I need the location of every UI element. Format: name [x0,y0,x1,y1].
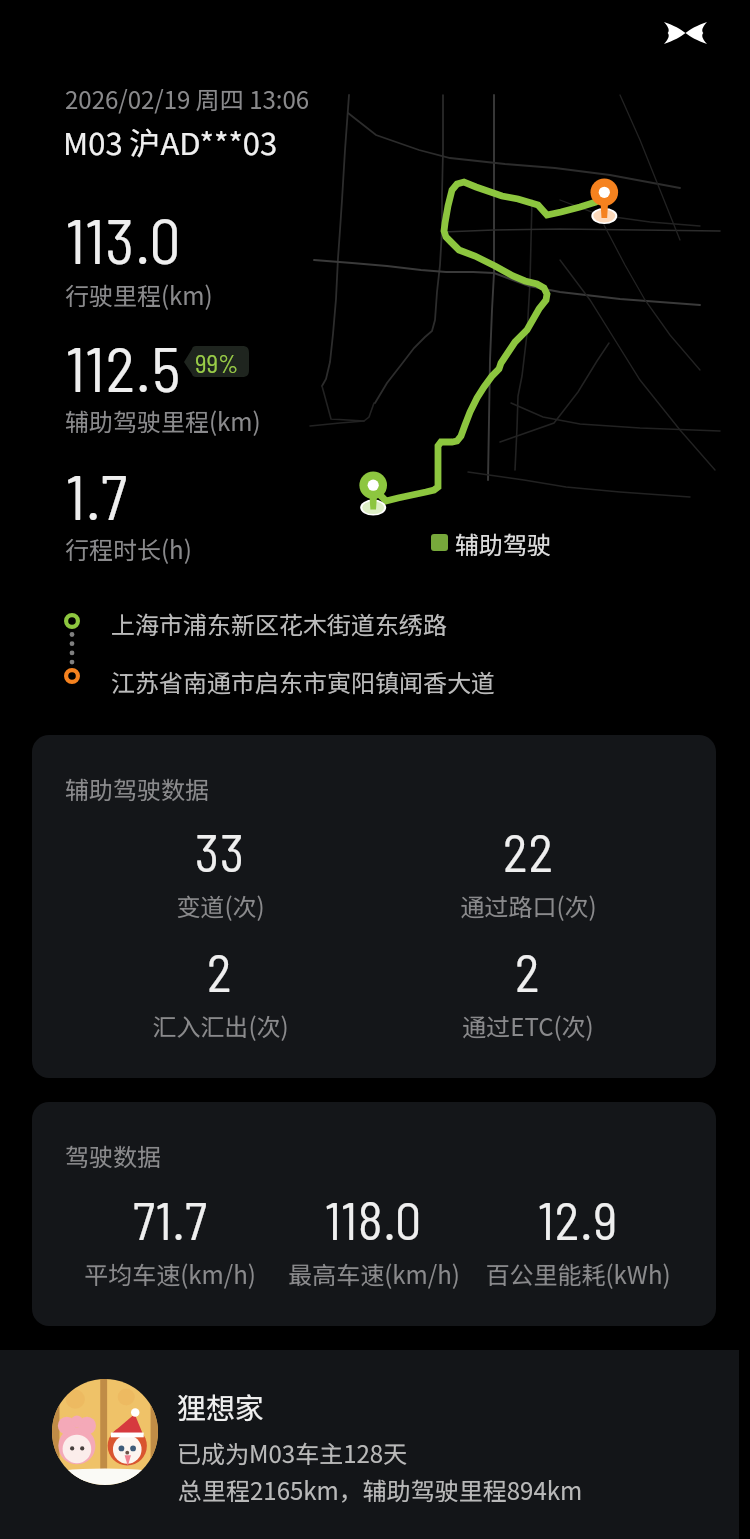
staticText: 通过ETC(次) [462,1008,594,1043]
staticText: 最高车速(km/h) [288,1256,460,1291]
staticText: 驾驶数据 [65,1138,161,1173]
button[interactable]: 狸想家 [0,1350,739,1539]
button[interactable]: 辅助驾驶数据 [32,735,716,1078]
staticText: M03 沪AD***03 [63,119,278,164]
staticText: 1.7 [66,458,129,532]
staticText: 112.5 [66,330,182,404]
staticText: 行驶里程(km) [65,277,213,312]
staticText: 33 [195,820,246,882]
staticText: 22 [503,820,554,882]
staticText: 行程时长(h) [65,531,192,566]
staticText: 总里程2165km，辅助驾驶里程894km [178,1472,583,1507]
staticText: 71.7 [133,1188,208,1250]
staticText: 百公里能耗(kWh) [485,1256,671,1291]
staticText: 汇入汇出(次) [152,1008,289,1043]
staticText: 2026/02/19 周四 13:06 [65,81,310,116]
staticText: 99% [195,348,239,378]
staticText: 变道(次) [176,888,265,923]
staticText: 狸想家 [177,1385,265,1427]
staticText: 118.0 [325,1188,423,1250]
button[interactable]: Brand logo [642,0,728,66]
staticText: 通过路口(次) [460,888,597,923]
button[interactable]: 驾驶数据 [32,1102,716,1326]
staticText: 已成为M03车主128天 [177,1435,408,1470]
staticText: 辅助驾驶 [455,526,551,561]
staticText: 2 [207,940,233,1002]
staticText: 平均车速(km/h) [84,1256,256,1291]
staticText: 辅助驾驶里程(km) [65,403,261,438]
staticText: 江苏省南通市启东市寅阳镇闻香大道 [111,664,495,699]
staticText: 113.0 [66,202,182,276]
staticText: 2 [515,940,541,1002]
staticText: 上海市浦东新区花木街道东绣路 [111,606,447,641]
staticText: 辅助驾驶数据 [65,771,209,806]
staticText: 12.9 [538,1188,619,1250]
